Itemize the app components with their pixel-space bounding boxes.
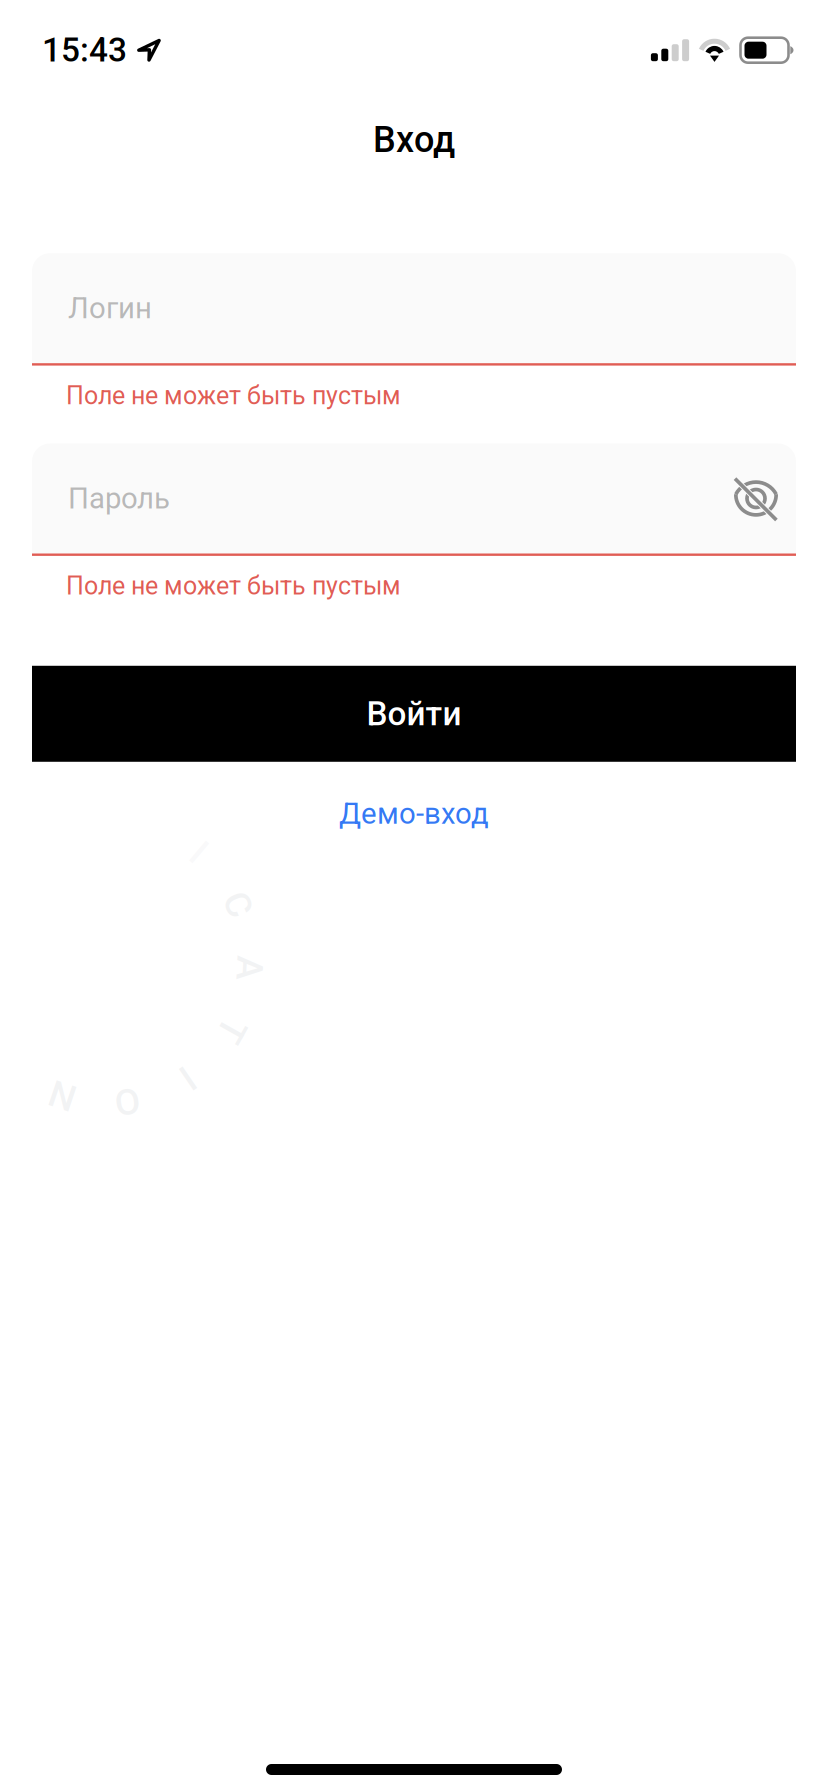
staticText: Пароль	[68, 481, 170, 516]
staticText: O	[114, 1080, 140, 1123]
staticText: Поле не может быть пустым	[66, 381, 401, 410]
staticText: Поле не может быть пустым	[66, 571, 401, 601]
staticText: N	[50, 1074, 76, 1117]
staticText: Логин	[68, 291, 152, 325]
button[interactable]: Показать пароль	[734, 480, 778, 517]
staticText: 15:43	[42, 31, 127, 70]
staticText: Вход	[373, 119, 455, 161]
staticText: I	[182, 1056, 193, 1100]
button[interactable]: Демо-вход	[0, 797, 828, 831]
button[interactable]: Войти	[32, 666, 796, 762]
staticText: Демо-вход	[339, 797, 489, 831]
staticText: C	[226, 882, 250, 926]
staticText: T	[220, 1009, 243, 1052]
staticText: A	[237, 946, 262, 990]
staticText: Войти	[366, 694, 461, 733]
